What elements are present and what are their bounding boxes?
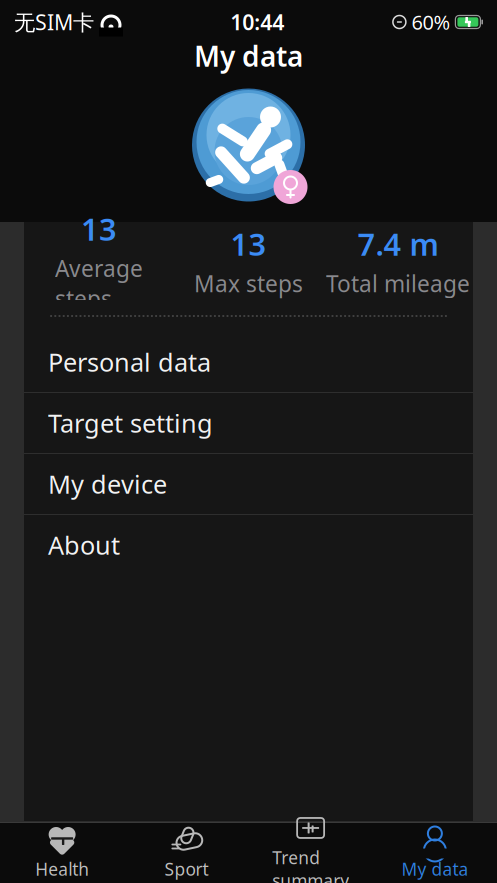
staticText: Sport (164, 857, 208, 880)
button[interactable]: Health (0, 823, 124, 883)
staticText: Trend summary (272, 846, 349, 883)
staticText: My data (401, 857, 468, 880)
button[interactable]: My data (373, 823, 497, 883)
staticText: 60% (411, 9, 450, 35)
staticText: 无SIM卡 (14, 8, 94, 36)
button[interactable]: Target setting (24, 393, 473, 453)
staticText: My data (194, 37, 303, 75)
staticText: 7.4 m (358, 224, 439, 264)
staticText: Max steps (194, 268, 303, 298)
staticText: 13 (81, 208, 117, 249)
button[interactable]: About (24, 515, 473, 575)
staticText: 10:44 (230, 8, 284, 36)
staticText: 13 (230, 224, 266, 264)
button[interactable]: Personal data (24, 332, 473, 392)
staticText: Personal data (48, 345, 211, 379)
staticText: Total mileage (326, 268, 470, 298)
staticText: Health (35, 857, 89, 880)
button[interactable]: Sport (124, 823, 248, 883)
staticText: Average steps (55, 253, 143, 313)
staticText: About (48, 528, 120, 562)
button[interactable]: Trend summary (248, 823, 373, 883)
button[interactable]: My device (24, 454, 473, 514)
staticText: Target setting (48, 406, 213, 440)
staticText: My device (48, 467, 167, 501)
